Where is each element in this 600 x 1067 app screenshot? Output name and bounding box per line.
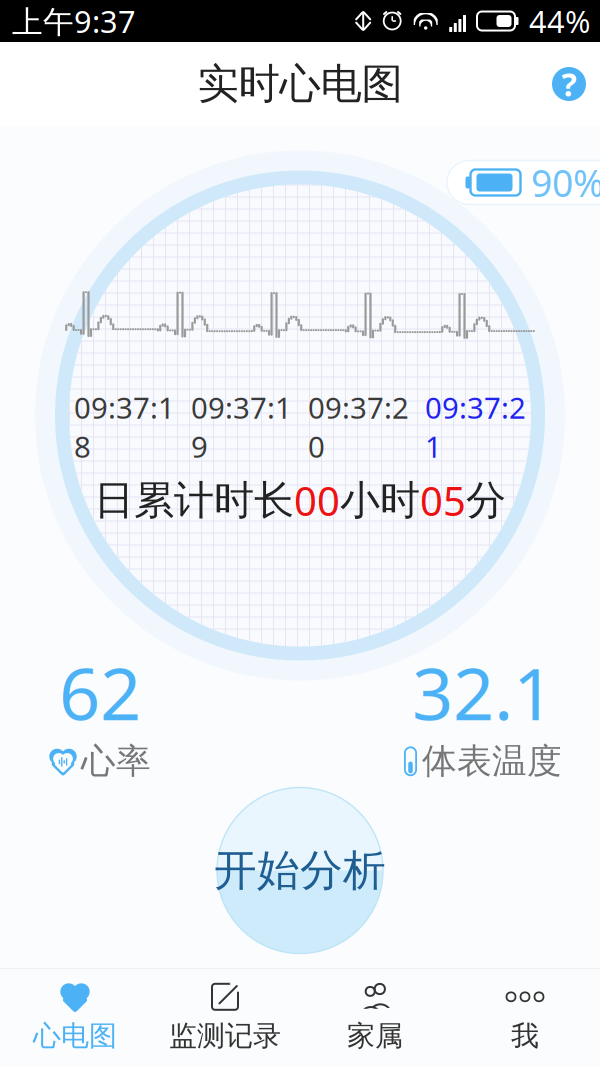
staticText: 开始分析 <box>214 844 386 897</box>
staticText: 监测记录 <box>169 1019 281 1053</box>
staticText: 上午9:37 <box>12 1 136 41</box>
staticText: 05 <box>420 474 466 527</box>
staticText: 44% <box>529 1 590 41</box>
staticText: 09:37:20 <box>308 388 409 466</box>
staticText: 日累计时长 <box>94 476 294 525</box>
staticText: 心电图 <box>33 1019 117 1053</box>
staticText: 09:37:18 <box>74 388 175 466</box>
button[interactable]: 心电图 <box>0 968 150 1066</box>
staticText: 32.1 <box>412 644 554 740</box>
staticText: 我 <box>511 1019 539 1053</box>
staticText: 分 <box>466 476 506 525</box>
staticText: 家属 <box>347 1019 403 1053</box>
button[interactable]: 我 <box>450 968 600 1066</box>
staticText: 09:37:19 <box>191 388 292 466</box>
staticText: 心率 <box>81 740 151 783</box>
staticText: 体表温度 <box>422 740 562 783</box>
staticText: 09:37:21 <box>425 388 526 466</box>
staticText: 小时 <box>340 476 420 525</box>
button[interactable]: 家属 <box>300 968 450 1066</box>
staticText: 00 <box>294 474 340 527</box>
button[interactable]: 监测记录 <box>150 968 300 1066</box>
staticText: ? <box>561 63 576 105</box>
staticText: 实时心电图 <box>197 59 402 109</box>
staticText: 90% <box>531 158 600 207</box>
staticText: 62 <box>59 644 141 740</box>
button[interactable]: 开始分析 <box>210 780 390 960</box>
button[interactable]: 帮助 <box>541 56 597 112</box>
